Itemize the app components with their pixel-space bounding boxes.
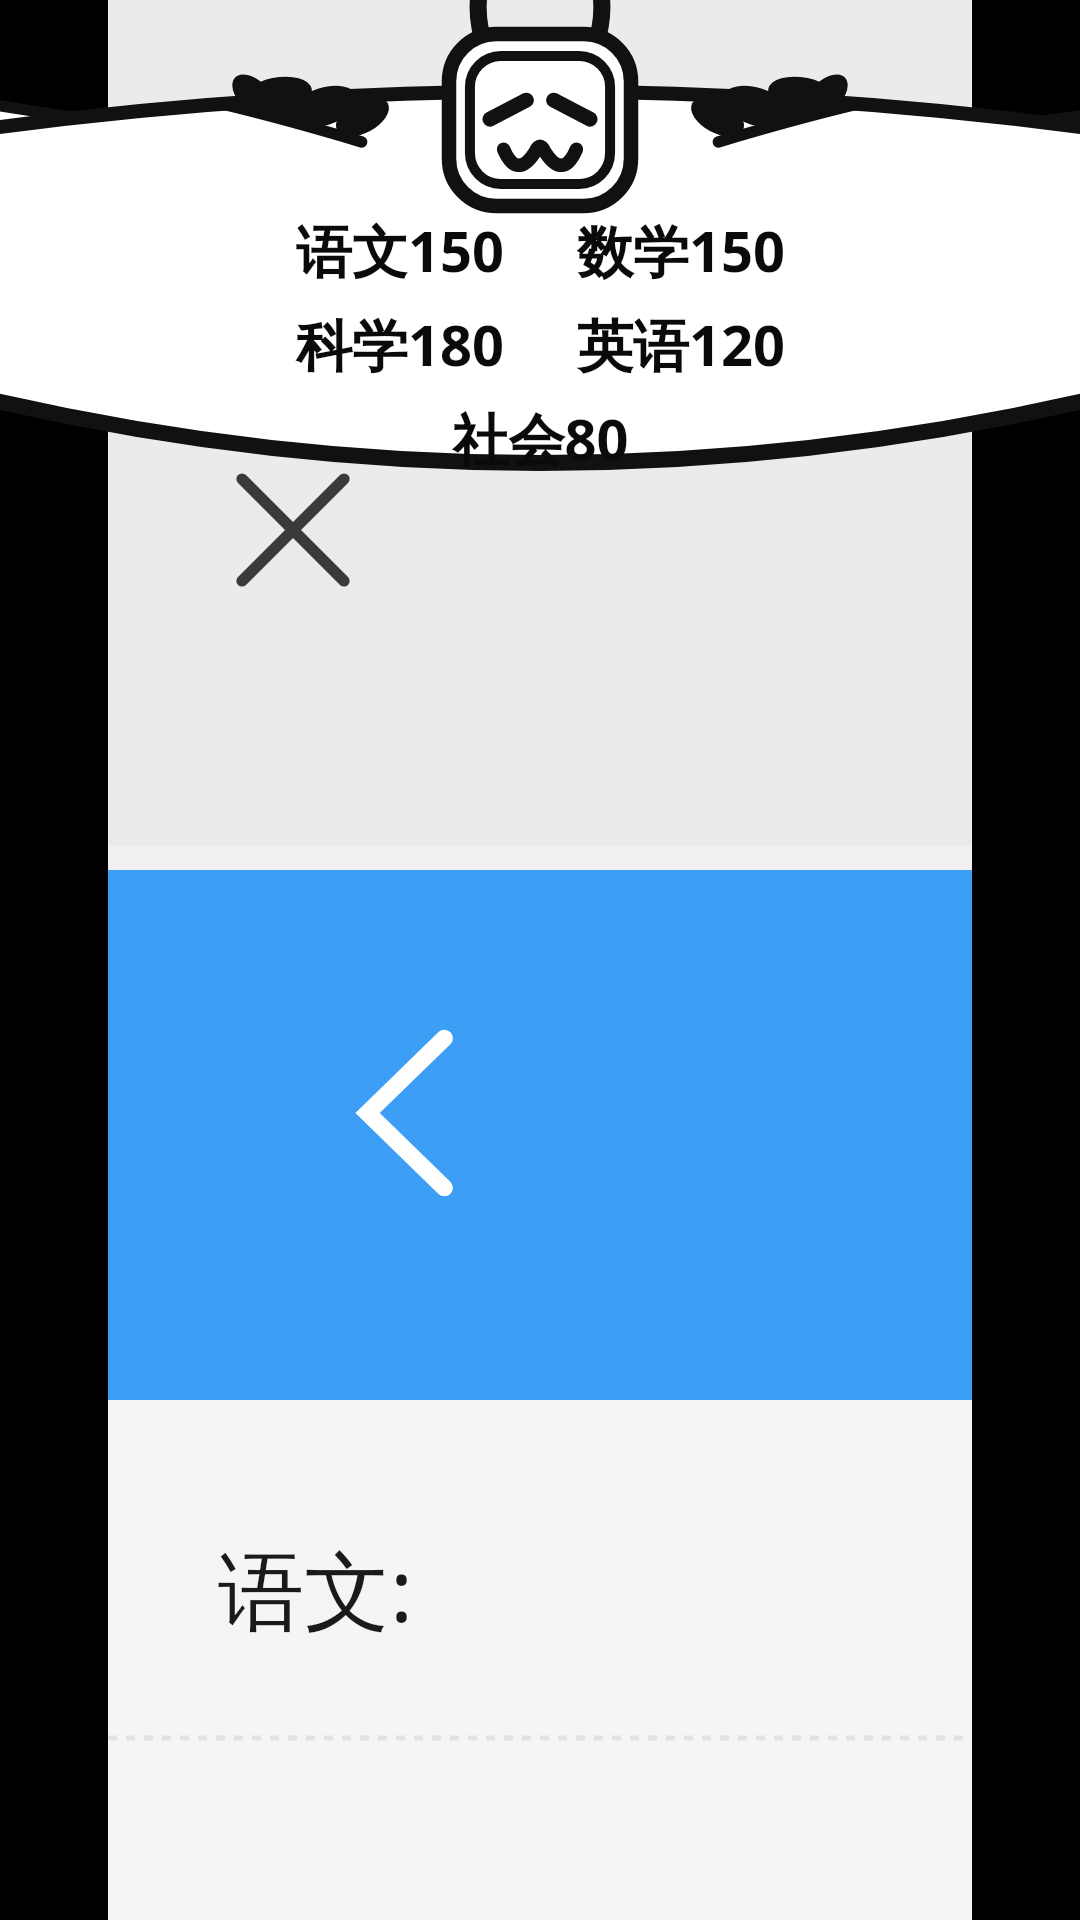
staticText: 语文:: [218, 1530, 414, 1647]
button[interactable]: Back: [108, 870, 972, 1400]
staticText: 语文150 数学150: [296, 212, 785, 288]
staticText: 社会80: [452, 400, 629, 476]
staticText: 科学180 英语120: [296, 306, 785, 382]
button[interactable]: Close: [218, 455, 368, 605]
